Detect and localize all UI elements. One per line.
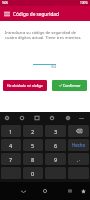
staticText: 4 bbox=[9, 142, 13, 149]
button[interactable]: 7 bbox=[1, 153, 21, 165]
staticText: 8 bbox=[31, 156, 35, 163]
button[interactable]: Keyboard tool 5 bbox=[63, 112, 72, 124]
button[interactable]: Home bbox=[36, 182, 54, 200]
staticText: 2 bbox=[31, 128, 35, 135]
staticText: 0/4 bbox=[33, 65, 56, 69]
button[interactable]: Backspace bbox=[68, 125, 89, 137]
button[interactable]: 5 bbox=[23, 139, 43, 151]
button[interactable]: 2 bbox=[23, 125, 43, 137]
button[interactable]: Hide keyboard bbox=[14, 182, 32, 200]
staticText: 0 bbox=[31, 170, 35, 177]
staticText: Hecho bbox=[72, 142, 86, 148]
button[interactable]: 4 bbox=[1, 139, 21, 151]
button[interactable]: Open navigation menu bbox=[0, 6, 13, 21]
staticText: 9:06 bbox=[2, 1, 9, 5]
staticText: 100% bbox=[80, 1, 88, 5]
staticText: 7 bbox=[9, 156, 13, 163]
button[interactable]: Switch keyboard bbox=[76, 182, 90, 200]
button[interactable]: 1 bbox=[1, 125, 21, 137]
staticText: , . bbox=[77, 157, 81, 162]
staticText: 6 bbox=[54, 142, 58, 149]
button[interactable]: 3 bbox=[45, 125, 66, 137]
button[interactable]: He olvidado mi código bbox=[3, 80, 47, 91]
staticText: He olvidado mi código bbox=[7, 83, 43, 88]
staticText: Confirmar bbox=[63, 83, 81, 88]
button[interactable]: Keyboard tool 3 bbox=[32, 112, 41, 124]
staticText: 9 bbox=[54, 156, 58, 163]
button[interactable]: 8 bbox=[23, 153, 43, 165]
button[interactable]: Recent apps bbox=[61, 182, 79, 200]
button[interactable]: Keyboard tool 4 bbox=[47, 112, 56, 124]
button[interactable]: 0 bbox=[23, 167, 43, 179]
button[interactable]: 9 bbox=[45, 153, 66, 165]
button[interactable]: 6 bbox=[45, 139, 66, 151]
button[interactable]: Keyboard tool 2 bbox=[17, 112, 26, 124]
button[interactable]: More options bbox=[76, 112, 86, 124]
staticText: 1 bbox=[9, 128, 13, 135]
button[interactable]: Comma and period bbox=[68, 153, 89, 165]
staticText: 3 bbox=[54, 128, 58, 135]
staticText: Código de seguridad bbox=[13, 11, 59, 17]
button[interactable]: Keyboard tool 1 bbox=[2, 112, 11, 124]
button[interactable]: Confirmar bbox=[52, 80, 87, 91]
staticText: Introduzca su código de seguridad de cua… bbox=[5, 30, 83, 40]
button[interactable]: Done bbox=[68, 139, 89, 151]
staticText: 5 bbox=[31, 142, 35, 149]
